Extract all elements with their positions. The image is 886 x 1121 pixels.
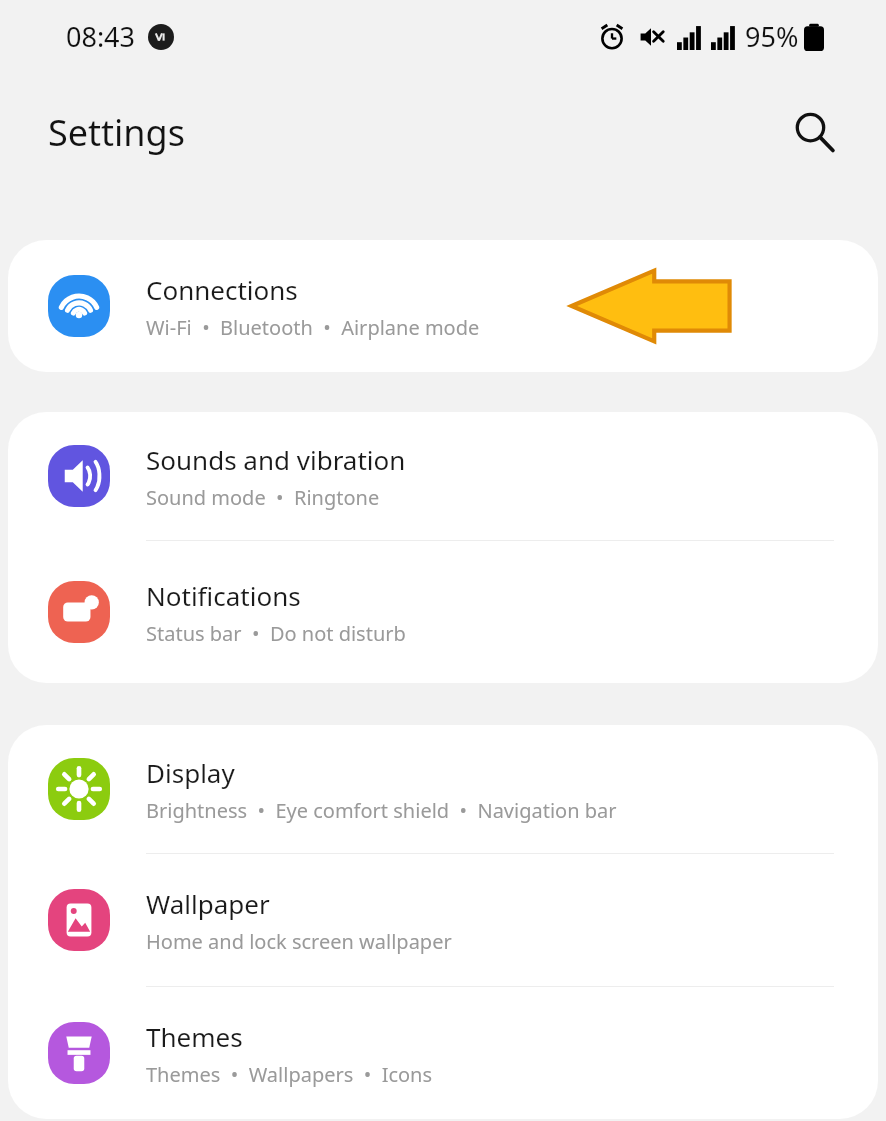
staticText: Themes • Wallpapers • Icons (146, 1061, 433, 1088)
staticText: Wallpaper (146, 886, 270, 921)
staticText: 95% (745, 18, 799, 55)
staticText: Themes (146, 1019, 243, 1054)
button[interactable]: Wallpaper (8, 854, 878, 986)
staticText: Sound mode • Ringtone (146, 484, 380, 511)
staticText: Settings (48, 108, 185, 157)
button[interactable]: Notifications (8, 541, 878, 683)
button[interactable]: Connections (8, 240, 878, 372)
button[interactable]: Sounds and vibration (8, 412, 878, 540)
staticText: Display (146, 755, 235, 790)
other: Pointer arrow (570, 268, 732, 344)
staticText: Sounds and vibration (146, 442, 406, 477)
button[interactable]: Search (786, 104, 842, 160)
staticText: 08:43 (66, 18, 136, 55)
button[interactable]: Themes (8, 987, 878, 1119)
button[interactable]: Display (8, 725, 878, 853)
staticText: Notifications (146, 578, 301, 613)
staticText: Connections (146, 272, 298, 307)
staticText: Home and lock screen wallpaper (146, 928, 452, 955)
staticText: Status bar • Do not disturb (146, 620, 406, 647)
staticText: Wi-Fi • Bluetooth • Airplane mode (146, 314, 480, 341)
staticText: Brightness • Eye comfort shield • Naviga… (146, 797, 617, 824)
